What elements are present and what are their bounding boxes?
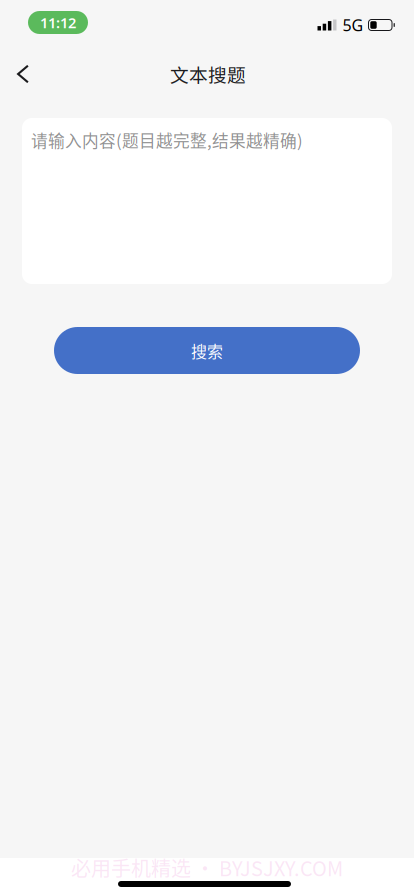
staticText: 文本搜题 bbox=[170, 60, 246, 87]
staticText: 11:12 bbox=[40, 13, 76, 32]
staticText: 请输入内容(题目越完整,结果越精确) bbox=[31, 128, 303, 152]
staticText: 搜索 bbox=[191, 339, 223, 362]
button[interactable]: Back bbox=[1, 52, 45, 96]
button[interactable]: 搜索 bbox=[54, 327, 360, 374]
button[interactable]: 请输入内容(题目越完整,结果越精确) bbox=[22, 118, 392, 284]
staticText: 5G bbox=[342, 14, 363, 36]
staticText: 必用手机精选 · BYJSJXY.COM bbox=[71, 853, 343, 882]
